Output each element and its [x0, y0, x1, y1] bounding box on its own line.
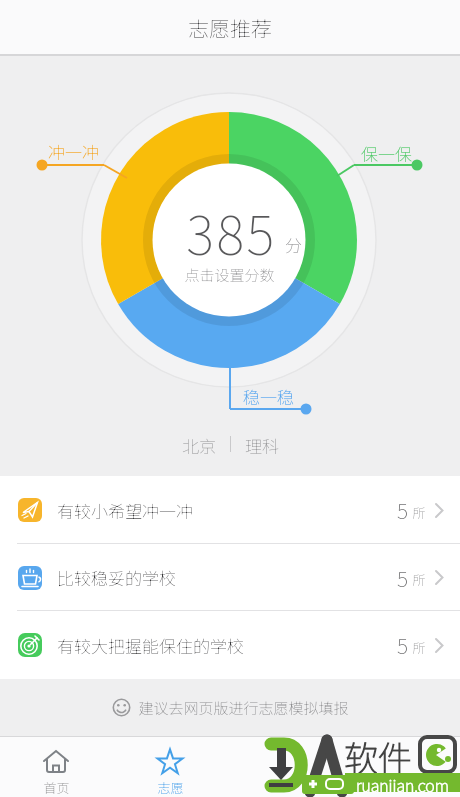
staticText: 所: [412, 570, 426, 589]
staticText: 5: [397, 630, 408, 660]
button[interactable]: 比较稳妥的学校: [0, 544, 460, 611]
staticText: 5: [397, 495, 408, 525]
button[interactable]: [152, 163, 306, 317]
button[interactable]: 志愿: [134, 740, 206, 797]
staticText: 所: [412, 638, 426, 657]
staticText: 软件: [344, 732, 412, 781]
staticText: 首页: [43, 778, 70, 797]
button[interactable]: 首页: [20, 740, 92, 797]
staticText: 志愿: [157, 778, 184, 797]
staticText: 有较大把握能保住的学校: [57, 633, 244, 658]
staticText: ruanjian.com: [356, 773, 449, 792]
staticText: 分: [285, 232, 302, 257]
staticText: 冲一冲: [48, 139, 99, 163]
staticText: 385: [186, 194, 277, 260]
staticText: 志愿推荐: [188, 13, 272, 43]
button[interactable]: 有较小希望冲一冲: [0, 476, 460, 544]
staticText: 稳一稳: [243, 384, 294, 408]
button[interactable]: 有较大把握能保住的学校: [0, 611, 460, 679]
staticText: 比较稳妥的学校: [57, 565, 176, 590]
staticText: 理科: [245, 433, 279, 455]
staticText: 5: [397, 563, 408, 593]
staticText: 建议去网页版进行志愿模拟填报: [138, 697, 349, 719]
staticText: 点击设置分数: [184, 264, 275, 286]
staticText: 保一保: [361, 141, 412, 165]
staticText: 北京: [182, 433, 216, 455]
staticText: 所: [412, 503, 426, 522]
button[interactable]: 建议去网页版进行志愿模拟填报: [0, 679, 460, 736]
staticText: 有较小希望冲一冲: [57, 498, 193, 523]
